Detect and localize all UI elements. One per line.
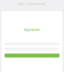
staticText: Sign in to continue [18,2,46,6]
button[interactable]: Sign in [4,53,59,57]
staticText: Logoipsum [24,28,40,31]
button[interactable]: Email [4,42,59,45]
